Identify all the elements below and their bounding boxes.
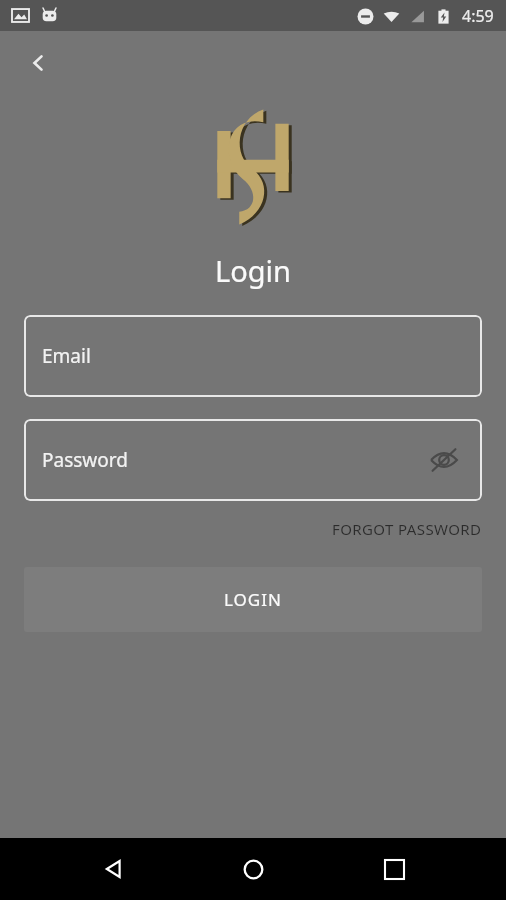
staticText: 4:59 [462,5,494,27]
staticText: Password [42,447,128,473]
button[interactable]: Back [85,841,141,897]
staticText: LOGIN [224,588,282,611]
button[interactable]: FORGOT PASSWORD [330,513,484,545]
button[interactable]: Email [24,315,482,397]
staticText: Login [215,251,291,290]
button[interactable]: LOGIN [24,567,482,632]
button[interactable]: Password [24,419,482,501]
button[interactable]: Recent apps [366,841,422,897]
button[interactable]: Back [14,39,62,87]
button[interactable]: Home [225,841,281,897]
staticText: Email [42,343,91,369]
button[interactable]: Show password [422,438,466,482]
staticText: FORGOT PASSWORD [332,519,482,539]
